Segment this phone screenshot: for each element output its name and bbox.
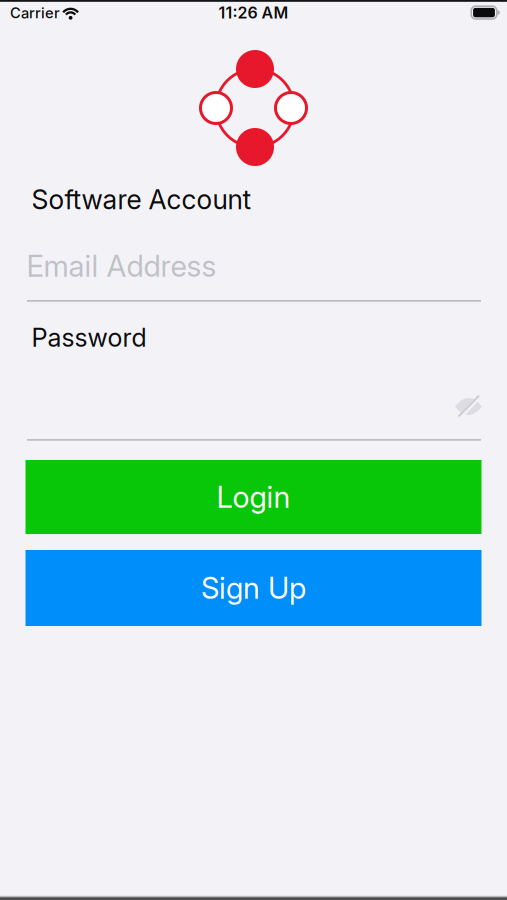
button[interactable]: Show password xyxy=(453,394,483,418)
staticText: Software Account xyxy=(31,184,251,215)
button[interactable]: Email Address xyxy=(26,240,480,292)
button[interactable]: Sign Up xyxy=(25,550,481,626)
staticText: Password xyxy=(31,323,146,352)
staticText: 11:26 AM xyxy=(218,3,288,22)
button[interactable]: Password xyxy=(31,319,485,355)
staticText: Carrier xyxy=(10,4,60,21)
staticText: Login xyxy=(216,480,290,514)
staticText: Email Address xyxy=(26,249,216,283)
staticText: Sign Up xyxy=(201,571,306,605)
button[interactable]: Login xyxy=(25,460,481,534)
